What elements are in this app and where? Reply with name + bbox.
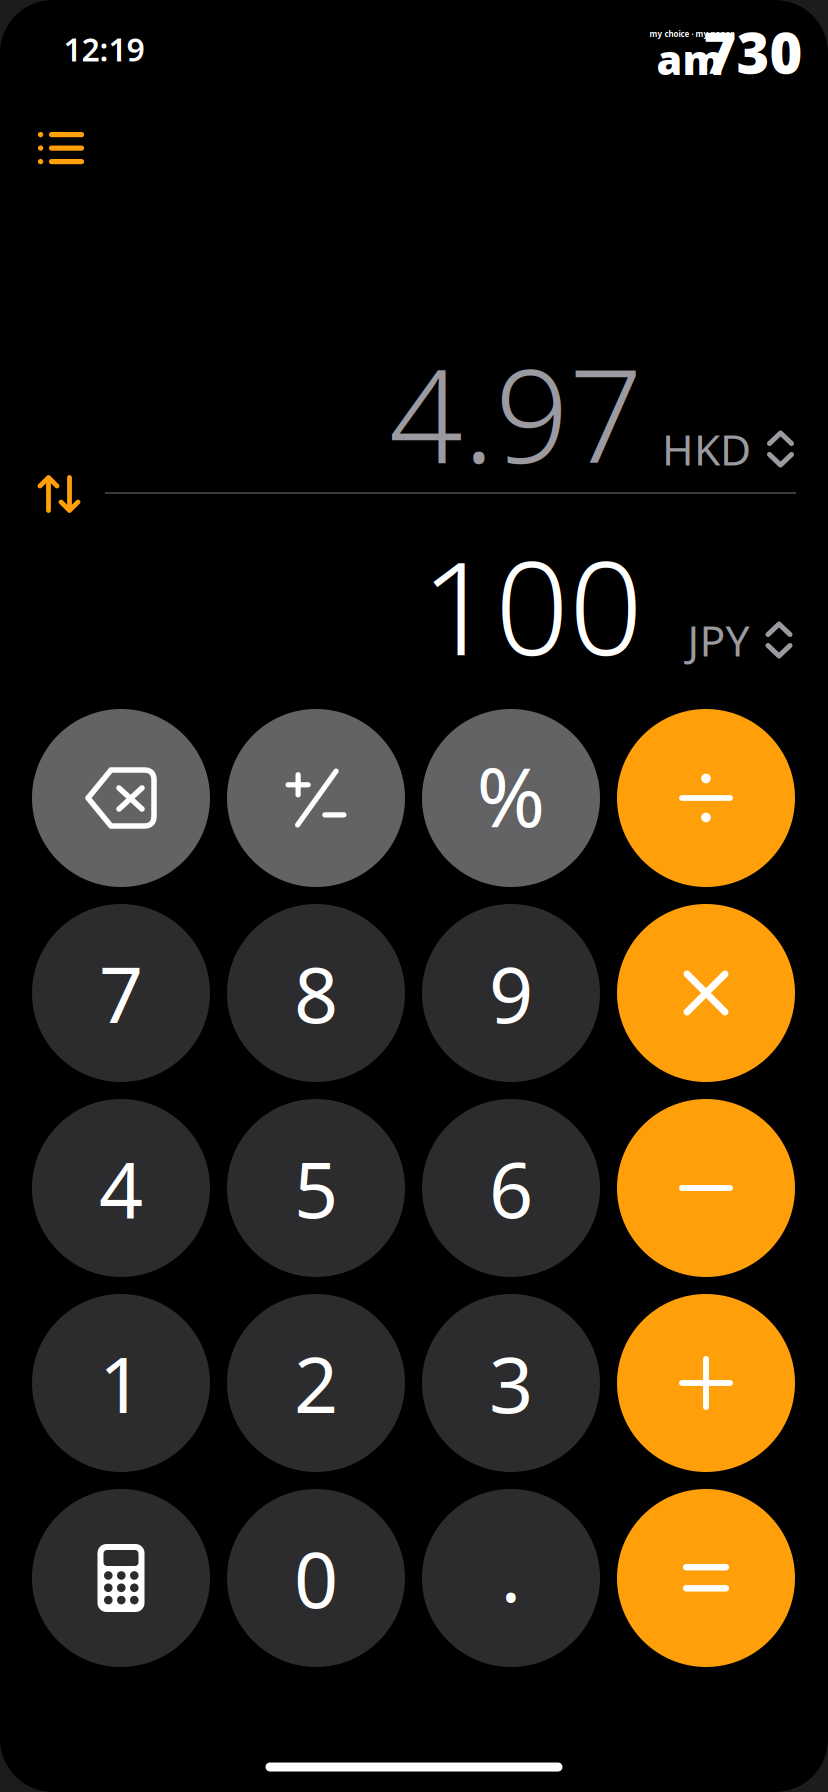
staticText: 1: [99, 1332, 143, 1434]
button[interactable]: 1: [32, 1294, 210, 1472]
staticText: 100: [421, 519, 643, 691]
button[interactable]: 8: [227, 904, 405, 1082]
button[interactable]: 4: [32, 1099, 210, 1277]
button[interactable]: Add: [617, 1294, 795, 1472]
staticText: JPY: [687, 612, 749, 668]
staticText: 6: [489, 1137, 533, 1239]
button[interactable]: %: [422, 709, 600, 887]
staticText: 9: [489, 942, 533, 1044]
button[interactable]: 9: [422, 904, 600, 1082]
staticText: HKD: [662, 421, 751, 477]
staticText: 8: [294, 942, 338, 1044]
button[interactable]: 0: [227, 1489, 405, 1667]
staticText: 4.97: [389, 327, 643, 499]
button[interactable]: 3: [422, 1294, 600, 1472]
staticText: 4: [99, 1137, 143, 1239]
button[interactable]: Toggle sign: [227, 709, 405, 887]
button[interactable]: Multiply: [617, 904, 795, 1082]
staticText: 730: [703, 15, 802, 89]
button[interactable]: 7: [32, 904, 210, 1082]
staticText: my choice · my paper: [649, 29, 734, 39]
button[interactable]: .: [422, 1489, 600, 1667]
button[interactable]: Currency list: [6, 102, 116, 194]
button[interactable]: Result currency HKD: [650, 409, 806, 489]
staticText: 3: [489, 1332, 533, 1434]
button[interactable]: Equals: [617, 1489, 795, 1667]
staticText: am: [656, 32, 723, 86]
button[interactable]: Calculator: [32, 1489, 210, 1667]
button[interactable]: 6: [422, 1099, 600, 1277]
button[interactable]: Source currency JPY: [675, 600, 804, 680]
staticText: .: [500, 1521, 521, 1623]
button[interactable]: 2: [227, 1294, 405, 1472]
button[interactable]: Swap currencies: [20, 454, 100, 534]
staticText: 5: [294, 1137, 338, 1239]
staticText: 2: [294, 1332, 338, 1434]
staticText: 7: [99, 942, 143, 1044]
button[interactable]: Divide: [617, 709, 795, 887]
staticText: 12:19: [63, 28, 144, 70]
button[interactable]: Subtract: [617, 1099, 795, 1277]
button[interactable]: 5: [227, 1099, 405, 1277]
button[interactable]: Delete: [32, 709, 210, 887]
staticText: %: [476, 740, 545, 850]
staticText: 0: [294, 1527, 338, 1629]
